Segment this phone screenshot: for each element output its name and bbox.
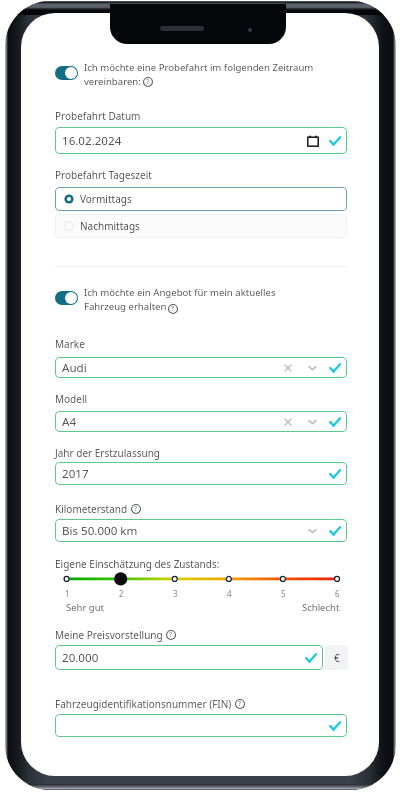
other: Valid	[329, 720, 341, 732]
staticText: 16.02.2024	[62, 133, 122, 149]
staticText: ?	[238, 699, 242, 709]
button[interactable]: Toggle option	[55, 291, 78, 305]
staticText: 5	[281, 588, 286, 599]
button[interactable]: Audi	[55, 357, 347, 378]
button[interactable]: Vormittags	[55, 187, 347, 211]
staticText: Bis 50.000 km	[62, 523, 138, 539]
staticText: 2017	[62, 466, 89, 482]
other: Expand	[309, 366, 316, 370]
other: Valid	[329, 416, 341, 428]
other: Valid	[305, 652, 317, 664]
staticText: ?	[169, 630, 173, 640]
other: Help	[166, 630, 176, 640]
button[interactable]: 2017	[55, 462, 347, 485]
staticText: Sehr gut	[66, 601, 104, 614]
staticText: 6	[335, 588, 340, 599]
other: Clear	[285, 419, 291, 425]
staticText: Probefahrt Tageszeit	[55, 168, 152, 182]
other: Expand	[309, 420, 316, 424]
staticText: Eigene Einschätzung des Zustands:	[55, 557, 220, 571]
other: Help	[168, 304, 178, 314]
staticText: Marke	[55, 337, 85, 351]
staticText: Ich möchte ein Angebot für mein aktuelle…	[84, 286, 315, 313]
other: Help	[131, 504, 141, 514]
other: Pick date	[307, 135, 319, 147]
staticText: Jahr der Erstzulassung	[55, 446, 161, 460]
staticText: ?	[146, 77, 150, 87]
staticText: Vormittags	[80, 192, 132, 206]
other: Valid	[329, 135, 341, 147]
staticText: €	[334, 651, 340, 665]
staticText: 20.000	[62, 650, 99, 666]
button[interactable]: Nachmittags	[55, 214, 347, 238]
staticText: Kilometerstand	[55, 502, 128, 516]
staticText: Probefahrt Datum	[55, 109, 141, 123]
staticText: Meine Preisvorstellung	[55, 628, 163, 642]
button[interactable]: Toggle option	[55, 66, 78, 80]
button[interactable]: 16.02.2024	[55, 127, 347, 154]
staticText: 3	[173, 588, 178, 599]
other: Valid	[329, 525, 341, 537]
staticText: 4	[227, 588, 232, 599]
staticText: ?	[134, 504, 138, 514]
button[interactable]: 20.000	[55, 645, 323, 670]
staticText: Modell	[55, 392, 88, 406]
other: Expand	[309, 529, 316, 533]
staticText: Ich möchte eine Probefahrt im folgenden …	[84, 61, 315, 88]
staticText: 2	[119, 588, 124, 599]
other: Clear	[285, 365, 291, 371]
button[interactable]: Valid	[55, 714, 347, 737]
staticText: Schlecht	[302, 601, 340, 614]
staticText: 1	[65, 588, 70, 599]
button[interactable]: Bis 50.000 km	[55, 519, 347, 542]
other: Help	[143, 77, 153, 87]
button[interactable]: A4	[55, 411, 347, 432]
staticText: Nachmittags	[80, 219, 140, 233]
other: Help	[235, 699, 245, 709]
other: Valid	[329, 468, 341, 480]
staticText: ?	[171, 304, 175, 314]
staticText: Fahrzeugidentifikationsnummer (FIN)	[55, 697, 232, 711]
button[interactable]	[55, 568, 347, 612]
staticText: A4	[62, 414, 77, 430]
other: Valid	[329, 362, 341, 374]
staticText: Audi	[62, 360, 87, 376]
